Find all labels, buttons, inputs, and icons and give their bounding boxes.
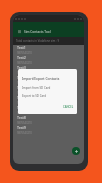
staticText: Test1 [17,45,26,50]
button[interactable]: Test4 [13,75,84,85]
staticText: 9876543210 [17,61,32,65]
staticText: Test6 [17,95,26,100]
other: Menu [18,30,21,33]
staticText: 9876543210 [17,51,32,55]
staticText: 9876543210 [17,121,32,125]
staticText: Export to SD Card [22,94,47,98]
staticText: 9876543210 [17,71,32,75]
button[interactable]: Test8 [13,115,84,125]
staticText: 9876543210 [17,131,32,135]
button[interactable]: Test5 [13,85,84,95]
staticText: Total contacts in Vodafone sim : 9 [16,39,60,43]
staticText: Test2 [17,55,26,60]
staticText: Test3 [17,65,26,70]
staticText: Test7 [17,105,26,110]
button[interactable]: Test9 [13,125,84,135]
staticText: Import from SD Card [22,86,51,90]
button[interactable]: Test1 [13,45,84,55]
button[interactable]: Test6 [13,95,84,105]
staticText: CANCEL [63,105,74,109]
staticText: 9876543210 [17,81,32,85]
button[interactable]: Export to SD Card [18,91,77,100]
staticText: 9876543210 [17,91,32,95]
button[interactable]: Import from SD Card [18,83,77,92]
staticText: Import/Export Contacts [22,76,60,80]
button[interactable]: Test7 [13,105,84,115]
button[interactable]: Test3 [13,65,84,75]
staticText: Test8 [17,115,26,120]
button[interactable]: Menu [13,22,84,37]
staticText: 9876543210 [17,101,32,105]
staticText: Test9 [17,125,26,130]
staticText: Test4 [17,75,26,80]
staticText: Sim Contacts Tool [24,30,51,34]
button[interactable]: Add contact [72,147,80,155]
button[interactable]: CANCEL [62,102,75,111]
button[interactable]: Test2 [13,55,84,65]
staticText: 9876543210 [17,111,32,115]
staticText: Test5 [17,85,26,90]
